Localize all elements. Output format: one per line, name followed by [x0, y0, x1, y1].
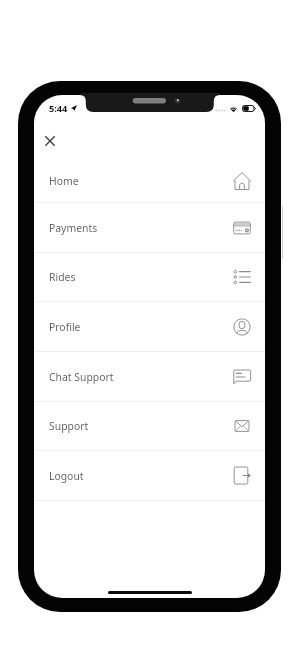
staticText: Logout	[49, 469, 84, 483]
staticText: Chat Support	[49, 370, 114, 384]
staticText: Home	[49, 174, 79, 188]
button[interactable]: Chat Support	[34, 352, 265, 402]
staticText: Support	[49, 419, 89, 433]
button[interactable]: Payments	[34, 203, 265, 253]
button[interactable]: Profile	[34, 302, 265, 352]
button[interactable]: Close	[34, 124, 66, 157]
button[interactable]: Support	[34, 401, 265, 451]
button[interactable]: Home	[34, 153, 265, 203]
staticText: Profile	[49, 320, 81, 334]
staticText: 5:44	[49, 102, 68, 115]
staticText: Rides	[49, 270, 76, 284]
staticText: Payments	[49, 221, 98, 235]
button[interactable]: Rides	[34, 252, 265, 302]
button[interactable]: Logout	[34, 451, 265, 501]
